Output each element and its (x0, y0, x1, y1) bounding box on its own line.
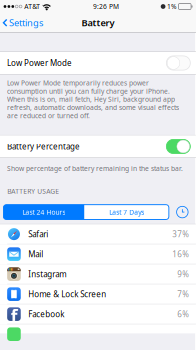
button[interactable]: Mail (0, 244, 196, 264)
button[interactable]: Last 7 Days (84, 205, 169, 219)
button[interactable]: Home & Lock Screen (0, 284, 196, 304)
staticText: 9% (177, 269, 189, 279)
button[interactable]: Battery Percentage (0, 135, 196, 157)
staticText: Low Power Mode (7, 58, 72, 68)
button[interactable]: f (0, 304, 196, 324)
button[interactable]: Low Power Mode (0, 52, 196, 74)
staticText: Low Power Mode temporarily reduces power… (7, 78, 179, 120)
staticText: Show percentage of battery remaining in … (7, 164, 183, 173)
staticText: Mail (28, 249, 43, 259)
staticText: Facebook (28, 309, 64, 319)
button[interactable]: Time details (176, 206, 189, 219)
staticText: 7% (177, 289, 189, 299)
staticText: Instagram (28, 269, 66, 279)
button[interactable]: Last 24 Hours (3, 205, 84, 219)
staticText: 37% (172, 229, 189, 239)
staticText: Home & Lock Screen (28, 289, 106, 299)
staticText: f (11, 304, 18, 327)
button[interactable]: Safari (0, 224, 196, 244)
staticText: Last 7 Days (109, 208, 144, 217)
staticText: Safari (28, 229, 48, 239)
staticText: Battery (81, 17, 114, 29)
staticText: AT&T (24, 2, 40, 11)
staticText: Last 24 Hours (22, 208, 65, 217)
staticText: Settings (9, 17, 43, 29)
button[interactable]: Instagram (0, 264, 196, 284)
staticText: Battery Percentage (7, 141, 80, 152)
staticText: 16% (172, 249, 189, 259)
button[interactable]: Settings (0, 13, 47, 32)
staticText: 9:26 PM (93, 2, 119, 11)
staticText: BATTERY USAGE (7, 187, 59, 196)
staticText: 6% (177, 309, 189, 319)
staticText: 1% (167, 2, 177, 11)
